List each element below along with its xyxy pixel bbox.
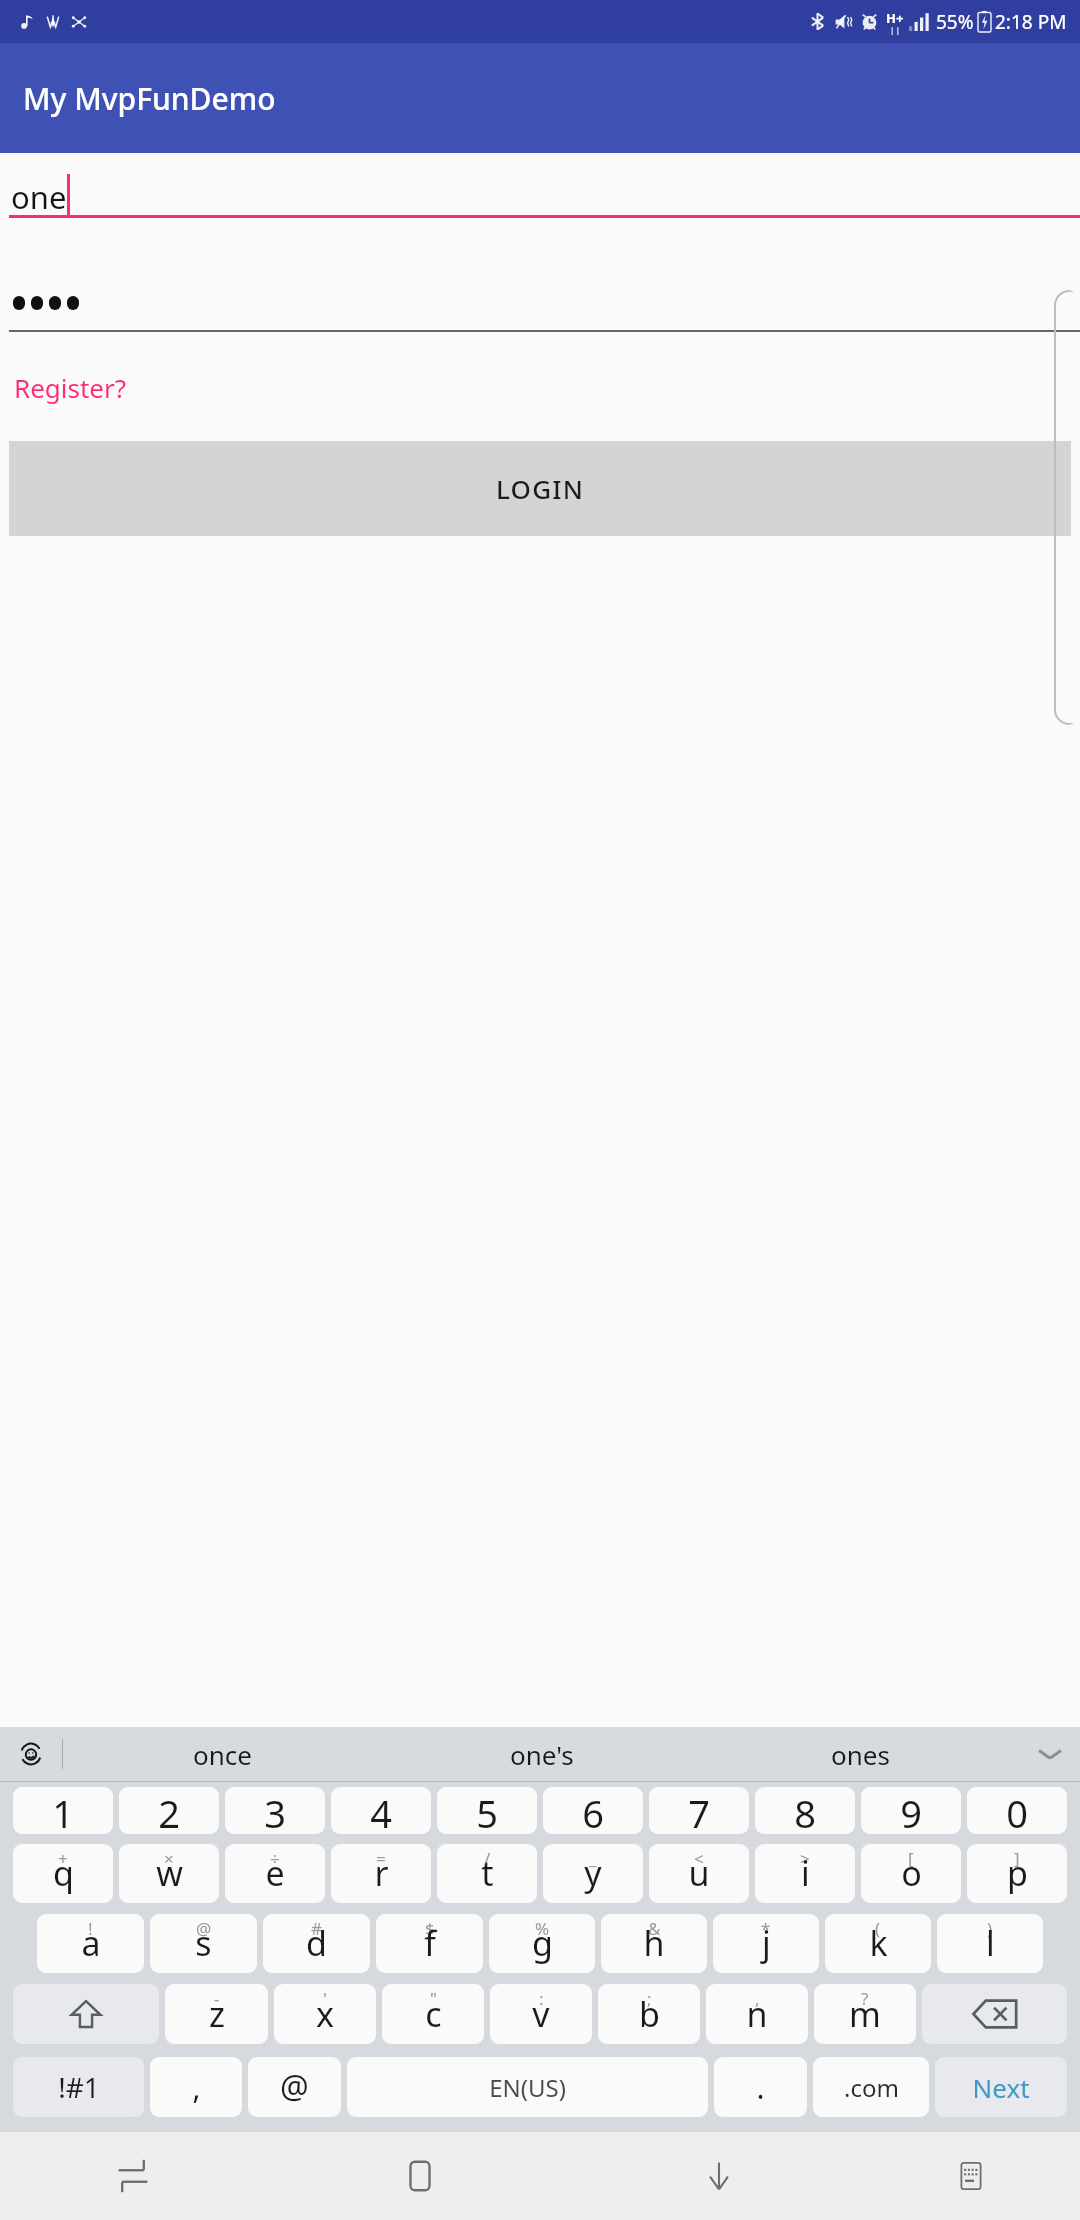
button[interactable]: one bbox=[0, 153, 1080, 218]
button[interactable]: - bbox=[165, 1984, 268, 2044]
button[interactable]: ÷ bbox=[225, 1844, 325, 1903]
staticText: i bbox=[801, 1850, 810, 1896]
staticText: _ bbox=[589, 1847, 597, 1870]
button[interactable]: . bbox=[714, 2057, 807, 2117]
staticText: h bbox=[643, 1920, 665, 1966]
button[interactable]: Switch keyboard bbox=[862, 2132, 1080, 2220]
button[interactable]: * bbox=[713, 1914, 819, 1973]
button[interactable]: Shift bbox=[13, 1984, 159, 2044]
button[interactable]: ? bbox=[814, 1984, 916, 2044]
button[interactable]: .com bbox=[813, 2057, 929, 2117]
staticText: 1 bbox=[52, 1787, 74, 1834]
staticText: u bbox=[688, 1850, 710, 1896]
button[interactable]: & bbox=[601, 1914, 707, 1973]
button[interactable]: : bbox=[490, 1984, 592, 2044]
button[interactable]: < bbox=[649, 1844, 749, 1903]
staticText: y bbox=[584, 1850, 602, 1896]
button[interactable]: ; bbox=[598, 1984, 700, 2044]
button[interactable]: , bbox=[706, 1984, 808, 2044]
staticText: , bbox=[755, 1987, 760, 2010]
button[interactable]: ( bbox=[825, 1914, 931, 1973]
staticText: EN(US) bbox=[489, 2071, 566, 2104]
button[interactable]: one's bbox=[382, 1727, 701, 1781]
button[interactable]: ) bbox=[937, 1914, 1043, 1973]
button[interactable]: EN(US) bbox=[347, 2057, 708, 2117]
button[interactable]: _ bbox=[543, 1844, 643, 1903]
button[interactable]: Next bbox=[935, 2057, 1067, 2117]
staticText: " bbox=[430, 1987, 437, 2010]
button[interactable] bbox=[0, 270, 1080, 332]
staticText: one's bbox=[510, 1737, 574, 1772]
button[interactable]: " bbox=[382, 1984, 484, 2044]
button[interactable]: Home bbox=[265, 2132, 575, 2220]
staticText: p bbox=[1007, 1850, 1028, 1896]
button[interactable]: / bbox=[437, 1844, 537, 1903]
staticText: ones bbox=[831, 1737, 890, 1772]
button[interactable]: 4 bbox=[331, 1787, 431, 1834]
staticText: * bbox=[761, 1917, 771, 1940]
staticText: . bbox=[756, 2067, 765, 2108]
button[interactable]: ones bbox=[701, 1727, 1020, 1781]
button[interactable]: × bbox=[119, 1844, 219, 1903]
staticText: !#1 bbox=[58, 2068, 100, 2106]
staticText: 6 bbox=[582, 1787, 604, 1834]
button[interactable]: @ bbox=[248, 2057, 341, 2117]
button[interactable]: 9 bbox=[861, 1787, 961, 1834]
button[interactable]: 6 bbox=[543, 1787, 643, 1834]
button[interactable]: 0 bbox=[967, 1787, 1067, 1834]
staticText: a bbox=[81, 1920, 101, 1966]
button[interactable]: Hide keyboard bbox=[575, 2132, 862, 2220]
button[interactable]: Recent apps bbox=[0, 2132, 265, 2220]
button[interactable]: Register? bbox=[0, 366, 127, 409]
staticText: LOGIN bbox=[496, 471, 585, 506]
button[interactable]: 3 bbox=[225, 1787, 325, 1834]
staticText: = bbox=[376, 1847, 386, 1870]
staticText: 8 bbox=[794, 1787, 816, 1834]
staticText: - bbox=[214, 1987, 220, 2010]
staticText: Register? bbox=[14, 370, 127, 405]
button[interactable]: [ bbox=[861, 1844, 961, 1903]
staticText: ] bbox=[1014, 1847, 1020, 1870]
button[interactable]: ' bbox=[274, 1984, 376, 2044]
staticText: : bbox=[539, 1987, 544, 2010]
button[interactable]: LOGIN bbox=[9, 441, 1071, 536]
button[interactable]: 5 bbox=[437, 1787, 537, 1834]
staticText: 3 bbox=[264, 1787, 286, 1834]
button[interactable]: $ bbox=[376, 1914, 483, 1973]
button[interactable]: More suggestions bbox=[1020, 1727, 1080, 1781]
staticText: q bbox=[53, 1850, 74, 1896]
staticText: ' bbox=[323, 1987, 327, 2010]
staticText: $ bbox=[425, 1917, 435, 1940]
staticText: ) bbox=[987, 1917, 993, 1940]
staticText: ÷ bbox=[270, 1847, 280, 1870]
staticText: Next bbox=[972, 2070, 1030, 2105]
staticText: once bbox=[193, 1737, 252, 1772]
staticText: + bbox=[58, 1847, 68, 1870]
staticText: & bbox=[648, 1917, 661, 1940]
staticText: b bbox=[639, 1991, 660, 2037]
staticText: n bbox=[746, 1991, 768, 2037]
button[interactable]: + bbox=[13, 1844, 113, 1903]
button[interactable]: 1 bbox=[13, 1787, 113, 1834]
button[interactable]: > bbox=[755, 1844, 855, 1903]
button[interactable]: ] bbox=[967, 1844, 1067, 1903]
button[interactable]: once bbox=[63, 1727, 382, 1781]
button[interactable]: !#1 bbox=[13, 2057, 144, 2117]
button[interactable]: % bbox=[489, 1914, 595, 1973]
staticText: % bbox=[535, 1917, 550, 1940]
button[interactable]: Emoji bbox=[0, 1727, 62, 1781]
button[interactable]: = bbox=[331, 1844, 431, 1903]
staticText: 5 bbox=[476, 1787, 498, 1834]
staticText: w bbox=[156, 1850, 183, 1896]
staticText: l bbox=[986, 1920, 995, 1966]
button[interactable]: 8 bbox=[755, 1787, 855, 1834]
button[interactable]: , bbox=[150, 2057, 242, 2117]
button[interactable]: Backspace bbox=[922, 1984, 1067, 2044]
staticText: 0 bbox=[1006, 1787, 1028, 1834]
button[interactable]: # bbox=[263, 1914, 370, 1973]
staticText: z bbox=[209, 1991, 225, 2037]
button[interactable]: @ bbox=[150, 1914, 257, 1973]
button[interactable]: 7 bbox=[649, 1787, 749, 1834]
button[interactable]: ! bbox=[37, 1914, 144, 1973]
button[interactable]: 2 bbox=[119, 1787, 219, 1834]
